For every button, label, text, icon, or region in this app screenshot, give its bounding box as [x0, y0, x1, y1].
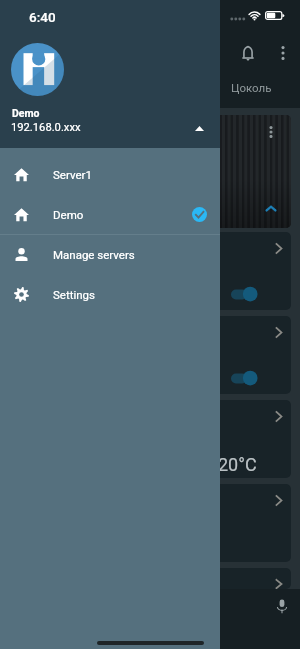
button[interactable]: Settings [0, 274, 220, 314]
staticText: Manage servers [53, 248, 135, 261]
button[interactable] [9, 316, 291, 394]
button[interactable] [9, 484, 291, 562]
staticText: Demo [12, 107, 40, 119]
staticText: Server1 [53, 168, 92, 181]
button[interactable]: Account avatar [11, 43, 64, 96]
button[interactable]: 20°C [9, 400, 291, 478]
staticText: Demo [53, 208, 84, 221]
button[interactable]: Manage servers [0, 234, 220, 274]
button[interactable] [9, 115, 291, 228]
staticText: Цоколь [231, 81, 272, 94]
button[interactable]: Notifications [234, 40, 261, 67]
staticText: Settings [53, 288, 95, 301]
button[interactable] [9, 232, 291, 310]
button[interactable]: Voice assistant [269, 593, 295, 619]
button[interactable]: Demo [0, 194, 220, 234]
button[interactable] [9, 568, 291, 589]
staticText: 20°C [218, 454, 257, 475]
staticText: 6:40 [29, 9, 56, 25]
staticText: 192.168.0.xxx [11, 121, 81, 134]
button[interactable]: More options [269, 39, 296, 66]
button[interactable]: Server1 [0, 154, 220, 194]
